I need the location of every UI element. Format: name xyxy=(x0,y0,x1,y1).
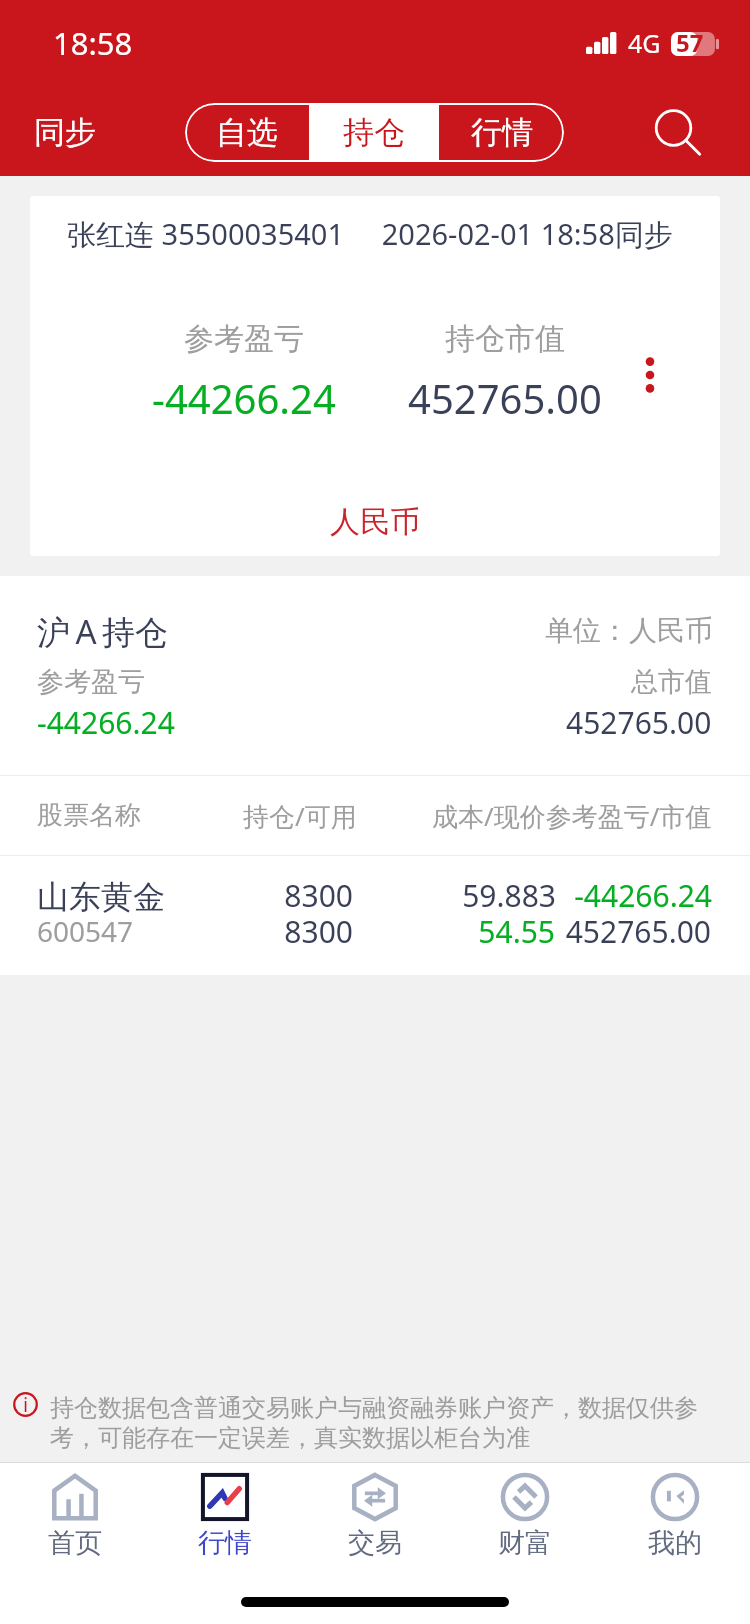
button[interactable]: 我的 xyxy=(600,1463,750,1580)
staticText: 山东黄金 xyxy=(37,877,165,917)
staticText: 成本/现价参考盈亏/市值 xyxy=(432,798,712,834)
staticText: 600547 xyxy=(37,912,134,950)
button[interactable]: 山东黄金 xyxy=(0,856,750,975)
staticText: 59.883 xyxy=(462,875,556,916)
staticText: 452765.00 xyxy=(408,371,602,425)
staticText: 54.55 xyxy=(478,911,555,952)
staticText: 行情 xyxy=(471,113,533,152)
staticText: -44266.24 xyxy=(574,875,712,916)
staticText: 行情 xyxy=(198,1526,252,1560)
button[interactable]: 自选 xyxy=(185,103,309,162)
staticText: 股票名称 xyxy=(37,799,141,832)
staticText: 8300 xyxy=(284,911,353,952)
button[interactable]: Search xyxy=(638,95,712,169)
staticText: 单位：人民币 xyxy=(545,613,713,648)
staticText: 参考盈亏 xyxy=(184,320,304,358)
staticText: 57 xyxy=(676,26,704,59)
button[interactable]: More options xyxy=(625,350,675,400)
staticText: 交易 xyxy=(348,1526,402,1560)
staticText: 张红连 35500035401 2026-02-01 18:58同步 xyxy=(67,214,673,254)
button[interactable]: 交易 xyxy=(300,1463,450,1580)
staticText: 8300 xyxy=(284,875,353,916)
staticText: 参考盈亏 xyxy=(37,665,145,699)
button[interactable]: 行情 xyxy=(150,1463,300,1580)
staticText: 我的 xyxy=(648,1526,702,1560)
button[interactable]: 首页 xyxy=(0,1463,150,1580)
staticText: 4G xyxy=(628,26,661,60)
staticText: 持仓 xyxy=(343,113,405,152)
staticText: 人民币 xyxy=(330,503,420,541)
button[interactable]: 行情 xyxy=(439,103,564,162)
button[interactable]: 持仓 xyxy=(309,103,439,162)
staticText: 持仓市值 xyxy=(445,320,565,358)
staticText: 沪 A 持仓 xyxy=(37,609,169,654)
staticText: 18:58 xyxy=(53,22,133,64)
button[interactable]: 同步 xyxy=(0,88,130,176)
staticText: 首页 xyxy=(48,1526,102,1560)
button[interactable]: 财富 xyxy=(450,1463,600,1580)
staticText: -44266.24 xyxy=(37,702,175,743)
staticText: 考，可能存在一定误差，真实数据以柜台为准 xyxy=(50,1423,530,1453)
staticText: 财富 xyxy=(498,1526,552,1560)
staticText: 持仓/可用 xyxy=(243,798,357,834)
staticText: 452765.00 xyxy=(566,702,712,743)
staticText: -44266.24 xyxy=(152,371,336,425)
staticText: 持仓数据包含普通交易账户与融资融券账户资产，数据仅供参 xyxy=(50,1393,698,1423)
staticText: 总市值 xyxy=(631,665,712,699)
staticText: 452765.00 xyxy=(565,911,711,952)
staticText: 自选 xyxy=(216,113,278,152)
staticText: 同步 xyxy=(34,113,96,152)
staticText: i xyxy=(23,1391,29,1416)
